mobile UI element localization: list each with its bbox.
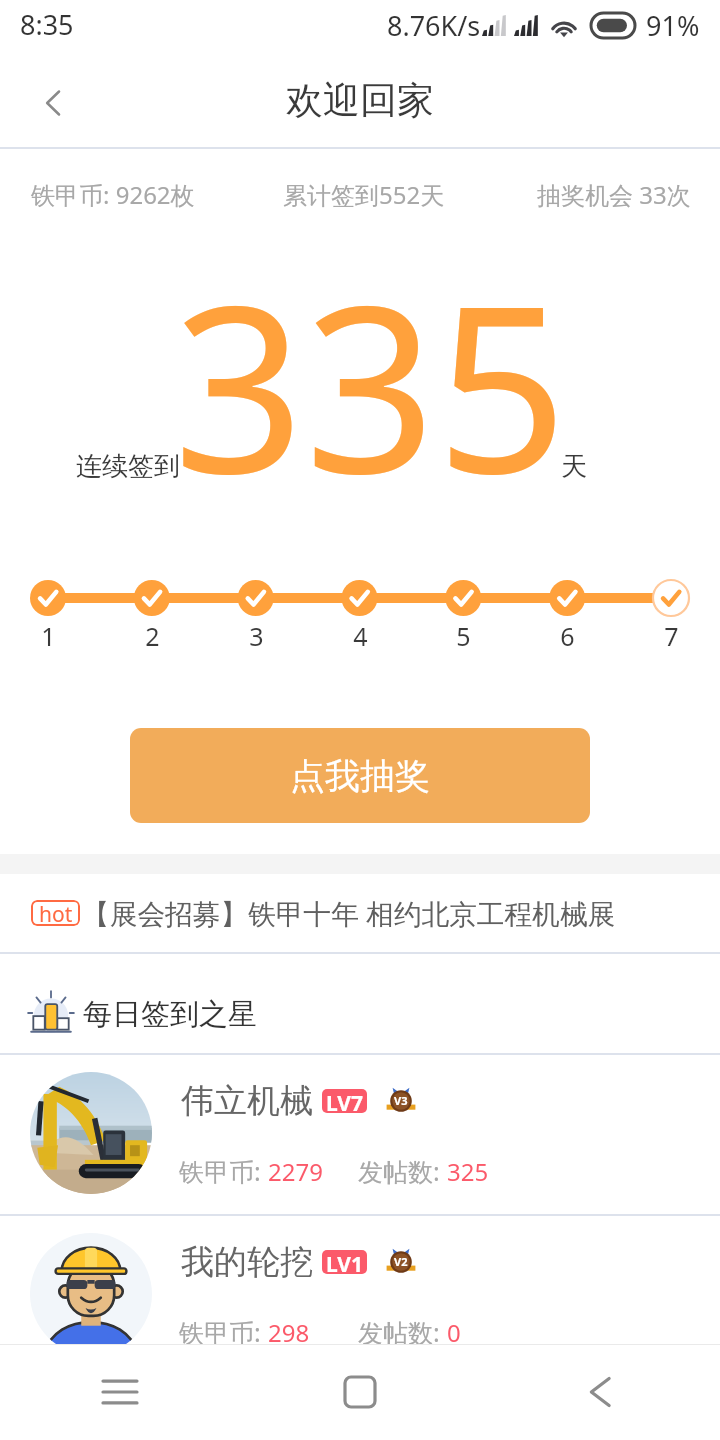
staticText: 335 — [173, 227, 568, 527]
staticText: 抽奖机会 33次 — [537, 178, 691, 211]
staticText: 累计签到552天 — [283, 178, 445, 211]
staticText: 1 — [41, 619, 56, 653]
staticText: 铁甲币: — [179, 1315, 268, 1349]
staticText: 点我抽奖 — [290, 754, 430, 798]
staticText: LV1 — [326, 1250, 363, 1274]
staticText: V2 — [394, 1254, 408, 1269]
staticText: 欢迎回家 — [286, 77, 434, 124]
staticText: 7 — [664, 619, 679, 653]
staticText: 我的轮挖 — [181, 1241, 313, 1283]
staticText: 0 — [447, 1316, 461, 1349]
staticText: 发帖数: — [358, 1154, 447, 1188]
staticText: 天 — [561, 450, 587, 483]
staticText: 3 — [249, 619, 264, 653]
staticText: hot — [39, 900, 73, 926]
staticText: 4 — [353, 619, 368, 653]
staticText: 5 — [456, 619, 471, 653]
button[interactable]: 点我抽奖 — [130, 728, 590, 823]
staticText: 发帖数: — [358, 1315, 447, 1349]
button[interactable]: Recent apps — [0, 1344, 240, 1440]
staticText: 2 — [145, 619, 160, 653]
staticText: 298 — [268, 1316, 310, 1349]
staticText: 【展会招募】铁甲十年 相约北京工程机械展 — [82, 894, 616, 932]
staticText: 8:35 — [20, 6, 74, 43]
staticText: 91% — [646, 7, 700, 44]
staticText: 2279 — [268, 1155, 323, 1188]
staticText: 连续签到 — [76, 450, 180, 483]
button[interactable]: Back — [20, 69, 88, 137]
staticText: 每日签到之星 — [83, 996, 257, 1033]
staticText: 6 — [560, 619, 575, 653]
staticText: V3 — [394, 1093, 408, 1108]
staticText: 325 — [447, 1155, 489, 1188]
button[interactable]: 伟立机械 — [0, 1054, 720, 1214]
staticText: 8.76K/s — [387, 7, 481, 44]
button[interactable]: Home — [240, 1344, 480, 1440]
staticText: 铁甲币: 9262枚 — [31, 178, 195, 211]
staticText: 伟立机械 — [181, 1080, 313, 1122]
button[interactable]: 我的轮挖 — [0, 1215, 720, 1375]
staticText: LV7 — [326, 1089, 363, 1113]
button[interactable]: hot — [0, 874, 720, 952]
button[interactable]: Back — [480, 1344, 720, 1440]
button[interactable]: 每日签到之星 — [0, 953, 720, 1053]
staticText: 铁甲币: — [179, 1154, 268, 1188]
